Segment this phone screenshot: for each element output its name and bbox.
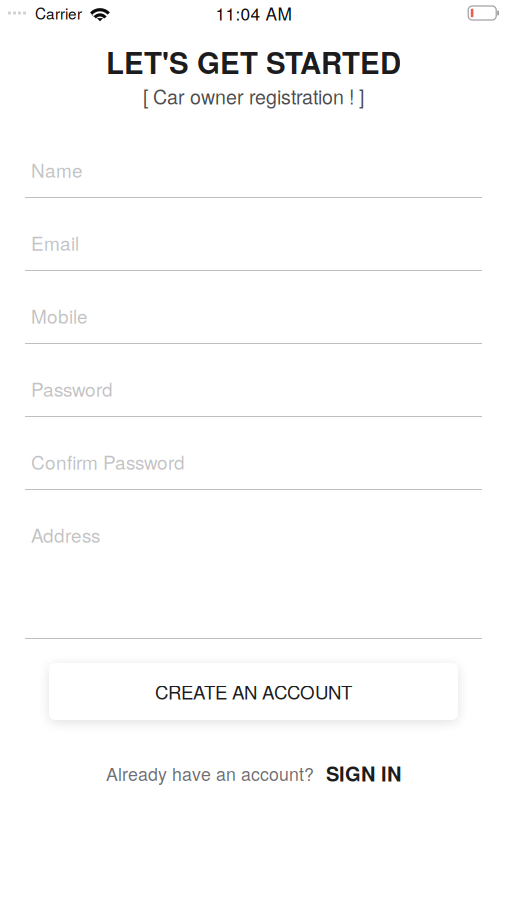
staticText: Carrier (35, 2, 82, 24)
staticText: 11:04 AM (215, 1, 291, 25)
staticText: Password (31, 375, 113, 402)
staticText: Confirm Password (31, 448, 185, 475)
staticText: Address (31, 521, 100, 548)
staticText: [ Car owner registration ! ] (143, 82, 364, 110)
staticText: Already have an account? (106, 761, 314, 786)
staticText: Mobile (31, 302, 88, 329)
staticText: SIGN IN (326, 759, 401, 788)
button[interactable]: Password (25, 344, 482, 417)
staticText: LET'S GET STARTED (106, 41, 401, 83)
button[interactable]: CREATE AN ACCOUNT (49, 663, 458, 720)
button[interactable]: Address (25, 490, 482, 639)
staticText: CREATE AN ACCOUNT (155, 678, 352, 705)
button[interactable]: Email (25, 198, 482, 271)
staticText: Name (31, 156, 83, 183)
button[interactable]: Mobile (25, 271, 482, 344)
staticText: Email (31, 229, 79, 256)
button[interactable]: SIGN IN (326, 759, 401, 788)
button[interactable]: Name (25, 155, 482, 198)
button[interactable]: Confirm Password (25, 417, 482, 490)
